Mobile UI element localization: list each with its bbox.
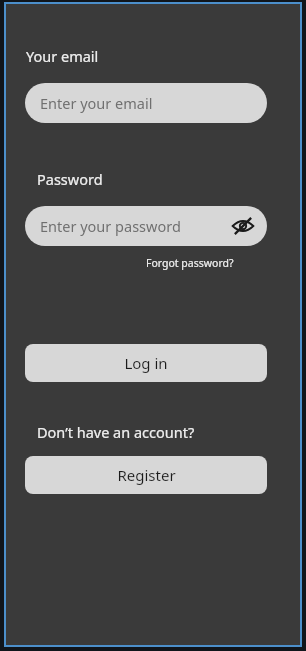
button[interactable]: Toggle password visibility (228, 211, 258, 241)
staticText: Don’t have an account? (37, 422, 195, 442)
staticText: Log in (124, 353, 168, 373)
staticText: Enter your email (40, 93, 153, 113)
staticText: Password (37, 169, 103, 189)
staticText: Enter your password (40, 216, 181, 236)
staticText: Your email (26, 46, 99, 66)
staticText: Forgot password? (146, 256, 234, 270)
button[interactable]: Log in (25, 344, 267, 382)
button[interactable]: Enter your password (25, 206, 267, 246)
button[interactable]: Forgot password? (144, 255, 236, 271)
button[interactable]: Enter your email (25, 83, 267, 123)
button[interactable]: Register (25, 456, 267, 494)
staticText: Register (117, 465, 176, 485)
